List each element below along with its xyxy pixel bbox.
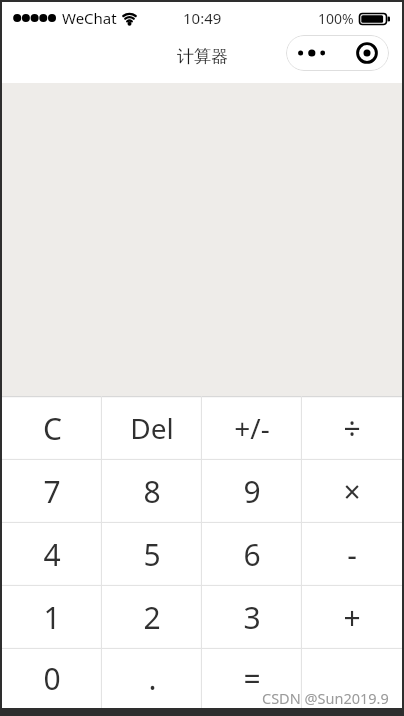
staticText: Del: [130, 409, 174, 447]
button[interactable]: 5: [102, 523, 202, 586]
staticText: 3: [243, 597, 261, 638]
button[interactable]: 3: [202, 586, 302, 649]
staticText: 计算器: [177, 46, 228, 67]
staticText: CSDN @Sun2019.9: [262, 688, 389, 708]
button[interactable]: .: [102, 649, 202, 708]
staticText: C: [43, 408, 62, 449]
button[interactable]: 7: [2, 460, 102, 523]
button[interactable]: +/-: [202, 396, 302, 460]
staticText: WeChat: [62, 8, 117, 28]
staticText: 0: [43, 658, 61, 699]
button[interactable]: 9: [202, 460, 302, 523]
staticText: .: [148, 658, 157, 699]
staticText: -: [347, 534, 357, 575]
staticText: 1: [43, 597, 61, 638]
button[interactable]: +: [302, 586, 402, 649]
button[interactable]: -: [302, 523, 402, 586]
button[interactable]: 6: [202, 523, 302, 586]
button[interactable]: C: [2, 396, 102, 460]
button[interactable]: 2: [102, 586, 202, 649]
button[interactable]: 1: [2, 586, 102, 649]
button[interactable]: ÷: [302, 396, 402, 460]
staticText: ÷: [343, 408, 361, 449]
button[interactable]: 0: [2, 649, 102, 708]
button[interactable]: [302, 649, 402, 708]
staticText: =: [243, 658, 261, 699]
staticText: 7: [43, 471, 61, 512]
staticText: +/-: [234, 409, 270, 447]
button[interactable]: 8: [102, 460, 202, 523]
staticText: 2: [143, 597, 161, 638]
staticText: ×: [343, 471, 361, 512]
button[interactable]: [286, 35, 389, 71]
staticText: 5: [143, 534, 161, 575]
staticText: 6: [243, 534, 261, 575]
staticText: 100%: [318, 9, 354, 28]
staticText: +: [343, 597, 361, 638]
staticText: 8: [143, 471, 161, 512]
staticText: 4: [43, 534, 61, 575]
button[interactable]: Del: [102, 396, 202, 460]
staticText: 9: [243, 471, 261, 512]
button[interactable]: =: [202, 649, 302, 708]
staticText: 10:49: [183, 8, 222, 28]
button[interactable]: ×: [302, 460, 402, 523]
button[interactable]: 4: [2, 523, 102, 586]
